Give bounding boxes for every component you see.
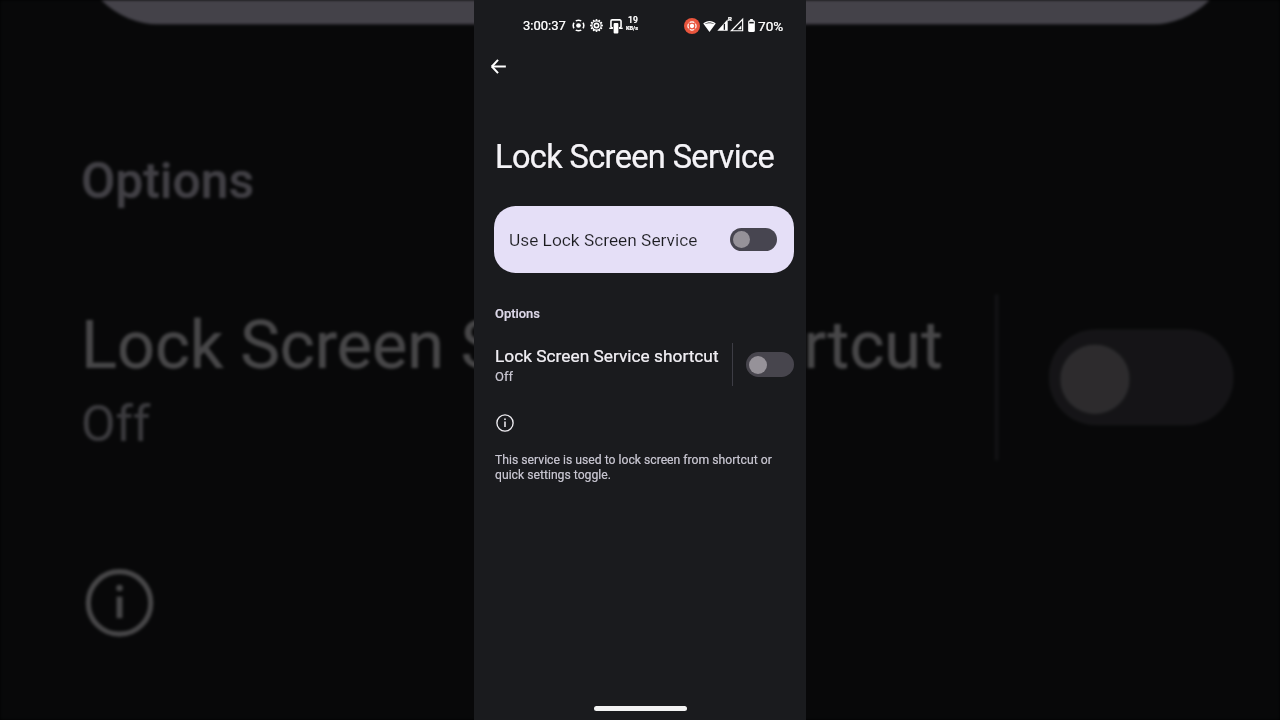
button[interactable]: Lock Screen Service shortcut: [0, 271, 968, 479]
staticText: This service is used to lock screen from…: [495, 453, 785, 482]
staticText: 19: [628, 15, 638, 25]
staticText: R: [728, 15, 732, 22]
button[interactable]: Toggle switch, off: [730, 228, 777, 251]
staticText: Use Lock Screen Service: [509, 230, 698, 250]
staticText: 3:00:37: [523, 18, 566, 33]
staticText: Off: [81, 395, 150, 452]
staticText: Lock Screen Service shortcut: [81, 306, 945, 383]
button[interactable]: Toggle switch, off: [1049, 329, 1234, 426]
button[interactable]: Toggle switch, off: [746, 352, 794, 377]
staticText: Options: [81, 152, 254, 210]
staticText: Off: [495, 369, 513, 384]
button[interactable]: Use Lock Screen Service: [77, 0, 1234, 25]
button[interactable]: Information: [85, 568, 154, 638]
button[interactable]: Navigate up: [474, 42, 522, 90]
staticText: Options: [495, 306, 540, 321]
staticText: 70%: [758, 18, 784, 34]
staticText: KB/s: [626, 25, 639, 32]
button[interactable]: Information: [496, 414, 514, 432]
staticText: Lock Screen Service shortcut: [495, 346, 719, 366]
button[interactable]: Use Lock Screen Service: [494, 206, 794, 273]
button[interactable]: Lock Screen Service shortcut: [474, 337, 725, 391]
staticText: Lock Screen Service: [495, 138, 775, 176]
staticText: This service is used to lock screen from…: [81, 719, 1199, 720]
